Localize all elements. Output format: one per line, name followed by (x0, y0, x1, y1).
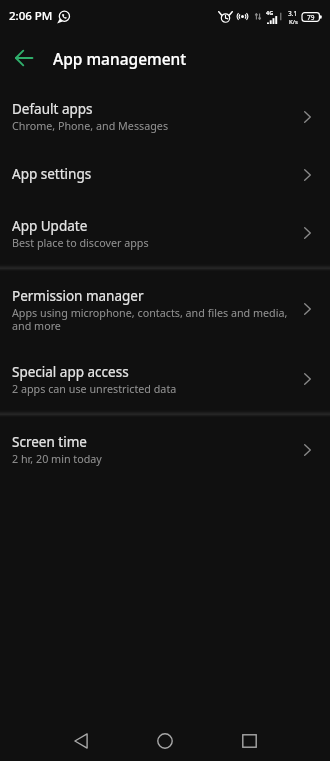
button[interactable]: Special app access (0, 347, 330, 410)
staticText: App settings (12, 162, 92, 184)
staticText: 79 (307, 13, 315, 22)
button[interactable]: Default apps (0, 84, 330, 149)
button[interactable]: Permission manager (0, 271, 330, 347)
staticText: App management (53, 48, 187, 69)
button[interactable]: Back (58, 721, 104, 761)
staticText: 2:06 PM (9, 8, 53, 24)
staticText: K/s (289, 18, 298, 26)
staticText: Screen time (12, 430, 87, 452)
button[interactable]: App settings (0, 149, 330, 201)
staticText: App Update (12, 214, 88, 236)
staticText: Best place to discover apps (12, 236, 149, 249)
staticText: 2 hr, 20 min today (12, 452, 102, 465)
button[interactable]: Back (5, 39, 43, 77)
button[interactable]: Recents (226, 721, 272, 761)
button[interactable]: App Update (0, 201, 330, 264)
staticText: Special app access (12, 360, 129, 382)
staticText: Permission manager (12, 284, 144, 306)
staticText: Apps using microphone, contacts, and fil… (12, 306, 296, 332)
staticText: 4G (266, 9, 274, 16)
staticText: 2 apps can use unrestricted data (12, 382, 177, 395)
staticText: Chrome, Phone, and Messages (12, 119, 169, 132)
staticText: 3.1 (288, 9, 298, 18)
staticText: Default apps (12, 97, 93, 119)
button[interactable]: Screen time (0, 417, 330, 482)
button[interactable]: Home (142, 721, 188, 761)
